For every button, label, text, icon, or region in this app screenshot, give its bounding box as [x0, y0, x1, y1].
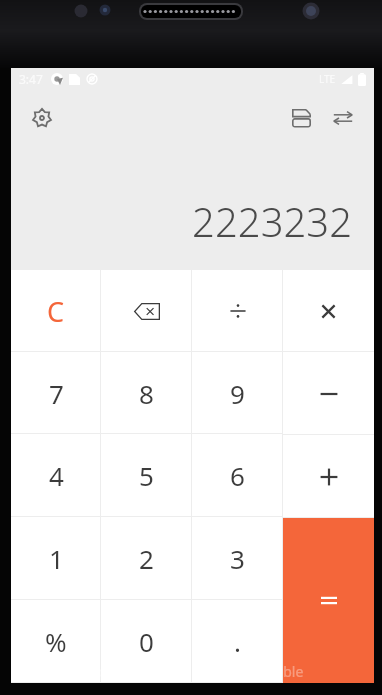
button[interactable]: Subtract	[283, 352, 374, 435]
button[interactable]: 2	[101, 517, 192, 600]
button[interactable]: Split screen	[284, 101, 318, 135]
button[interactable]: Convert units	[326, 101, 360, 135]
button[interactable]: 9	[192, 352, 283, 434]
button[interactable]: Backspace	[101, 270, 192, 352]
button[interactable]: Divide	[192, 270, 283, 352]
button[interactable]: 3	[192, 517, 283, 600]
staticText: 6	[230, 458, 245, 493]
staticText: 7	[49, 376, 64, 411]
button[interactable]: 5	[101, 434, 192, 517]
staticText: C	[47, 293, 65, 330]
button[interactable]: 0	[101, 600, 192, 683]
staticText: 3:47	[19, 71, 43, 87]
staticText: 5	[139, 458, 154, 493]
button[interactable]: 8	[101, 352, 192, 434]
button[interactable]: 4	[11, 434, 101, 517]
staticText: https://blog.csdn.net/Evil_invisible	[79, 662, 304, 681]
button[interactable]: Multiply	[283, 270, 374, 352]
staticText: 4	[49, 458, 64, 493]
staticText: 2223232	[192, 194, 352, 248]
staticText: .	[234, 624, 241, 659]
button[interactable]: 6	[192, 434, 283, 517]
button[interactable]: Settings	[25, 101, 59, 135]
staticText: 1	[49, 541, 64, 576]
staticText: 3	[230, 541, 245, 576]
button[interactable]: 7	[11, 352, 101, 434]
button[interactable]: C	[11, 270, 101, 352]
button[interactable]: .	[192, 600, 283, 683]
staticText: 8	[139, 376, 154, 411]
button[interactable]: 1	[11, 517, 101, 600]
staticText: 9	[230, 376, 245, 411]
staticText: LTE	[319, 72, 336, 86]
staticText: 0	[139, 624, 154, 659]
staticText: %	[45, 624, 67, 659]
staticText: 2	[139, 541, 154, 576]
button[interactable]: Equals	[283, 518, 374, 683]
button[interactable]: Add	[283, 435, 374, 518]
button[interactable]: %	[11, 600, 101, 683]
